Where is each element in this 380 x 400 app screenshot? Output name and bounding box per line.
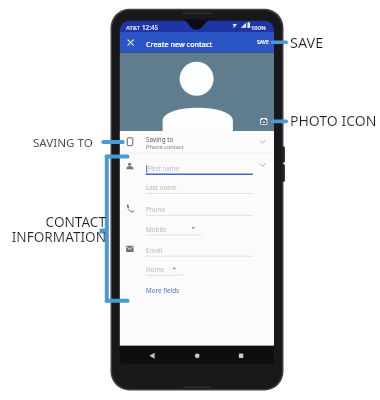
staticText: More fields xyxy=(146,286,180,295)
button[interactable]: SAVE xyxy=(254,36,272,49)
staticText: Phone xyxy=(146,205,165,214)
staticText: SAVING TO xyxy=(33,135,93,151)
staticText: Mobile xyxy=(146,225,167,234)
button[interactable]: More fields xyxy=(144,284,182,297)
staticText: Last name xyxy=(146,183,177,192)
staticText: 12:45 xyxy=(142,23,159,32)
button[interactable]: Close xyxy=(122,34,139,51)
staticText: Create new contact xyxy=(146,39,213,49)
staticText: Phone contact xyxy=(146,143,184,151)
staticText: Home xyxy=(146,265,164,274)
staticText: CONTACT INFORMATION xyxy=(0,212,106,246)
staticText: First name xyxy=(148,164,180,173)
staticText: SAVE xyxy=(257,39,269,46)
staticText: Email xyxy=(146,246,163,255)
staticText: 100% xyxy=(251,24,266,32)
staticText: SAVE xyxy=(290,33,324,53)
staticText: PHOTO ICON xyxy=(290,111,377,130)
staticText: Saving to xyxy=(146,135,174,144)
staticText: AT&T xyxy=(126,24,140,32)
